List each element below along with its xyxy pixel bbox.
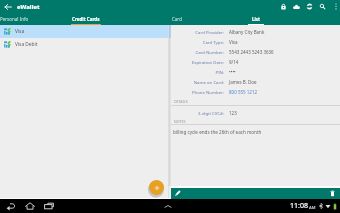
button[interactable]: Visa — [0, 25, 171, 38]
staticText: NOTES — [174, 119, 186, 124]
button[interactable]: Edit — [172, 187, 184, 199]
button[interactable]: Back — [2, 1, 14, 13]
button[interactable]: Cloud — [291, 1, 302, 12]
staticText: Visa Debit — [15, 41, 38, 48]
staticText: DETAILS — [174, 99, 188, 104]
button[interactable]: List — [248, 13, 264, 25]
staticText: PIN: — [215, 69, 224, 75]
staticText: Name on Card: — [193, 79, 224, 85]
button[interactable]: Credit Cards — [71, 13, 101, 25]
staticText: Visa — [229, 39, 238, 45]
staticText: Phone Number: — [192, 89, 224, 95]
staticText: Credit Cards — [72, 16, 100, 22]
button[interactable]: Refresh — [304, 1, 315, 12]
staticText: 3-digit CVC#: — [198, 110, 224, 116]
button[interactable]: Visa Debit — [0, 38, 171, 51]
button[interactable]: Add — [149, 180, 164, 195]
staticText: eWallet — [17, 3, 40, 11]
staticText: •••• — [229, 69, 236, 75]
button[interactable]: More options — [332, 1, 339, 12]
staticText: AM — [309, 205, 316, 210]
staticText: 9/14 — [229, 59, 239, 65]
staticText: 123 — [229, 110, 237, 116]
staticText: billing cycle ends the 26th of each mont… — [173, 129, 262, 135]
button[interactable]: Card — [168, 13, 186, 25]
staticText: 11:08 — [290, 201, 308, 211]
staticText: Personal Info — [0, 16, 28, 22]
staticText: List — [252, 16, 261, 22]
button[interactable]: Search — [317, 1, 328, 12]
staticText: Expiration Date: — [191, 59, 224, 65]
staticText: Card Number: — [195, 49, 224, 55]
staticText: 800 555 1212 — [229, 89, 258, 95]
button[interactable]: Lock — [278, 1, 289, 12]
button[interactable]: Personal Info — [0, 13, 28, 25]
staticText: Card — [172, 16, 182, 22]
staticText: Card Provider: — [195, 29, 224, 35]
button[interactable]: Recents — [42, 199, 56, 213]
button[interactable]: Home — [23, 199, 37, 213]
button[interactable]: Delete — [327, 187, 337, 199]
staticText: 5543 2443 5243 3636 — [229, 49, 274, 55]
staticText: James B. Doe — [229, 79, 257, 85]
staticText: Card Type: — [202, 39, 224, 45]
staticText: Visa — [15, 28, 25, 35]
button[interactable]: Back — [4, 199, 18, 213]
staticText: Albany City Bank — [229, 29, 265, 35]
